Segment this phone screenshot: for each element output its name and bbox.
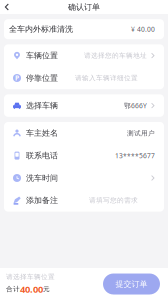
button[interactable]: 联系电话 xyxy=(4,144,164,167)
staticText: 提交订单 xyxy=(115,279,147,289)
staticText: P xyxy=(15,74,19,82)
staticText: 联系电话 xyxy=(26,151,58,160)
staticText: 车辆位置 xyxy=(26,51,58,60)
staticText: 添加备注 xyxy=(26,195,58,205)
button[interactable]: 返回 xyxy=(0,0,14,14)
staticText: 请输入车辆详细位置 xyxy=(75,74,138,82)
button[interactable]: 提交订单 xyxy=(103,273,160,294)
staticText: 测试用户 xyxy=(127,129,155,137)
button[interactable]: 车主姓名 xyxy=(4,122,164,144)
button[interactable]: 添加备注 xyxy=(4,189,164,212)
staticText: 40.00 xyxy=(20,283,43,295)
staticText: 元 xyxy=(43,285,50,293)
staticText: 请填写您的需求 xyxy=(89,196,138,204)
staticText: 车主姓名 xyxy=(26,128,58,138)
staticText: 停靠位置 xyxy=(26,73,58,83)
staticText: 洗车时间 xyxy=(26,173,58,183)
staticText: 确认订单 xyxy=(68,2,100,12)
staticText: 选择车辆 xyxy=(26,101,58,110)
button[interactable]: P xyxy=(4,67,164,89)
staticText: 合计 xyxy=(6,285,20,293)
button[interactable]: 洗车时间 xyxy=(4,167,164,189)
staticText: 请选择您的车辆地址 xyxy=(84,51,147,60)
staticText: 鄂666Y xyxy=(124,101,147,110)
staticText: ¥ 40.00 xyxy=(131,25,155,34)
button[interactable]: 车辆位置 xyxy=(4,44,164,67)
button[interactable]: 选择车辆 xyxy=(4,94,164,117)
staticText: 13****5677 xyxy=(115,151,155,160)
staticText: 全车内外标准清洗 xyxy=(9,24,73,34)
staticText: 请选择车辆位置 xyxy=(6,273,55,281)
